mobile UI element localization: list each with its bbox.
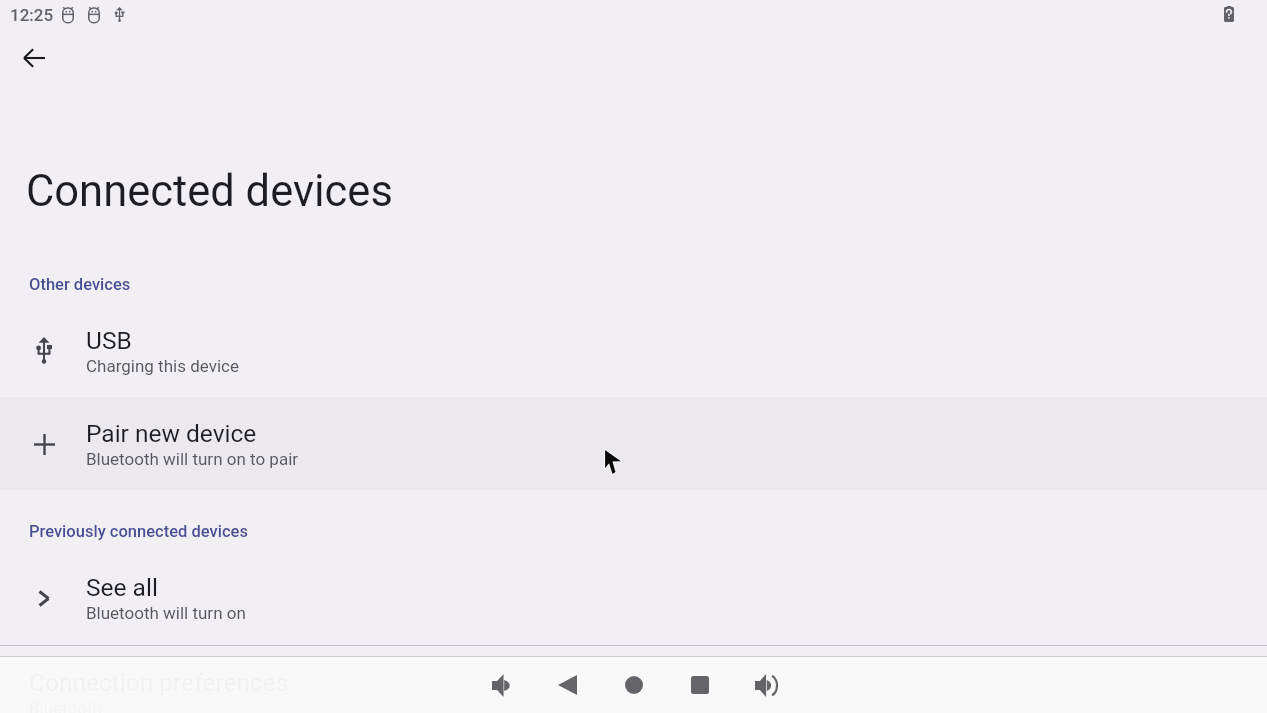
staticText: Previously connected devices [29,522,248,541]
button[interactable]: Connection preferences [0,646,1267,713]
button[interactable]: Volume down [469,657,535,713]
button[interactable]: USB [0,304,1267,397]
staticText: Pair new device [86,419,257,448]
button[interactable]: Pair new device [0,397,1267,490]
button[interactable]: Back [23,48,45,68]
button[interactable]: Recents [667,657,733,713]
staticText: USB [86,326,132,355]
button[interactable]: Volume up [733,657,799,713]
staticText: Charging this device [86,356,239,376]
staticText: Other devices [29,275,131,294]
staticText: Bluetooth will turn on to pair [86,449,299,469]
staticText: See all [86,573,158,602]
button[interactable]: Back [535,657,601,713]
staticText: Bluetooth will turn on [86,603,246,623]
button[interactable]: Home [601,657,667,713]
button[interactable]: See all [0,551,1267,644]
staticText: 12:25 [10,5,54,25]
staticText: Connected devices [26,166,393,217]
